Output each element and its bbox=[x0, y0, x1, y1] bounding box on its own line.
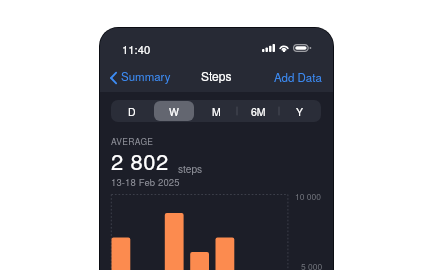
staticText: D bbox=[128, 104, 136, 119]
staticText: AVERAGE bbox=[111, 135, 154, 147]
staticText: 6M bbox=[251, 104, 266, 119]
staticText: 13-18 Feb 2025 bbox=[111, 175, 180, 189]
staticText: W bbox=[169, 104, 179, 119]
staticText: 2 802 bbox=[111, 145, 169, 177]
staticText: 5 000 bbox=[301, 260, 323, 270]
staticText: Summary bbox=[121, 68, 171, 84]
button[interactable]: D bbox=[112, 101, 152, 121]
other: Back to Summary bbox=[110, 72, 117, 84]
staticText: 10 000 bbox=[295, 190, 321, 202]
staticText: steps bbox=[178, 161, 203, 176]
other: Battery bbox=[293, 44, 310, 52]
staticText: M bbox=[212, 104, 221, 119]
button[interactable]: Back to Summary bbox=[110, 67, 171, 87]
staticText: Steps bbox=[201, 67, 232, 84]
button[interactable]: Add Data bbox=[274, 69, 322, 85]
staticText: Y bbox=[296, 104, 304, 119]
button[interactable]: Y bbox=[280, 101, 320, 121]
other: Wi-Fi bbox=[279, 44, 289, 52]
button[interactable]: W bbox=[154, 101, 194, 121]
staticText: 11:40 bbox=[122, 41, 151, 57]
other: Cellular signal bbox=[262, 44, 275, 52]
button[interactable]: 6M bbox=[238, 101, 278, 121]
staticText: Add Data bbox=[274, 69, 322, 85]
button[interactable]: M bbox=[196, 101, 236, 121]
